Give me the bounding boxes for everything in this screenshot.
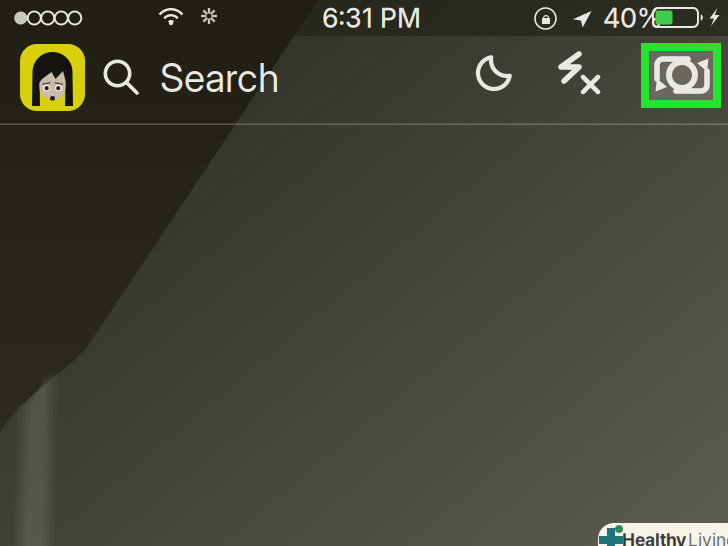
staticText: Living <box>688 529 728 546</box>
button[interactable]: Flash off <box>557 51 607 99</box>
staticText: 40% <box>603 2 662 34</box>
button[interactable]: Flip camera <box>641 43 721 108</box>
staticText: 6:31 PM <box>322 2 421 34</box>
staticText: Healthy <box>622 529 686 546</box>
button[interactable]: Profile <box>20 44 85 111</box>
button[interactable]: Night mode <box>472 51 516 95</box>
staticText: Search <box>160 55 279 101</box>
button[interactable]: Search <box>103 50 298 106</box>
